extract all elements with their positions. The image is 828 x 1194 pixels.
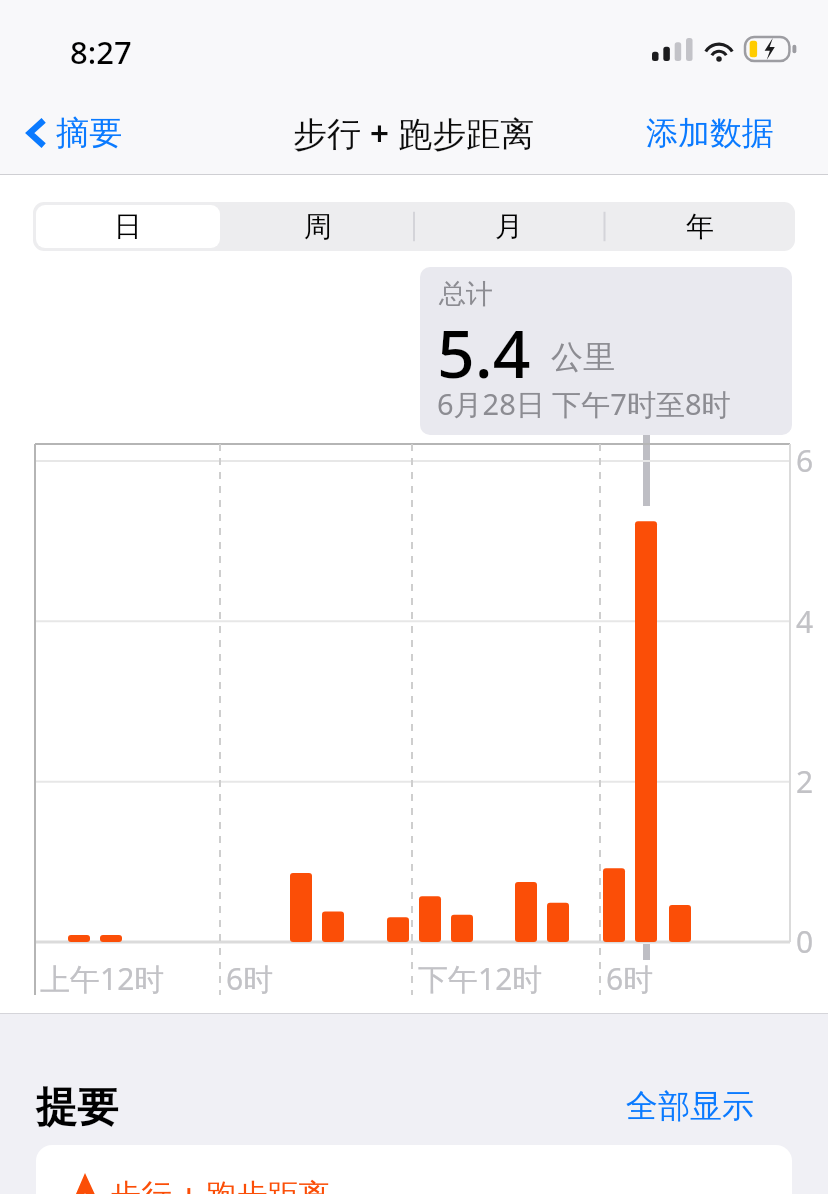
staticText: 8:27: [70, 31, 132, 73]
staticText: 上午12时: [40, 958, 165, 999]
staticText: 6月28日 下午7时至8时: [437, 384, 731, 424]
staticText: 周: [304, 209, 332, 244]
staticText: 日: [114, 209, 142, 244]
staticText: 年: [686, 209, 714, 244]
staticText: 6: [796, 440, 814, 481]
staticText: 提要: [36, 1082, 118, 1134]
button[interactable]: 月: [413, 202, 604, 251]
staticText: 6时: [226, 958, 274, 999]
button[interactable]: 全部显示: [600, 1078, 780, 1134]
staticText: 总计: [439, 277, 493, 311]
button[interactable]: 日: [33, 202, 223, 251]
staticText: 步行 + 跑步距离: [293, 110, 535, 156]
button[interactable]: 步行 + 跑步距离: [36, 1145, 792, 1194]
other: Back: [26, 116, 47, 150]
button[interactable]: Back: [14, 100, 134, 166]
staticText: 2: [796, 761, 814, 802]
staticText: 添加数据: [646, 113, 774, 153]
staticText: 4: [796, 601, 814, 642]
button[interactable]: 年: [604, 202, 795, 251]
staticText: 6时: [606, 958, 654, 999]
staticText: 步行 + 跑步距离: [110, 1173, 330, 1194]
staticText: 0: [796, 921, 814, 962]
staticText: 全部显示: [626, 1086, 754, 1126]
button[interactable]: 添加数据: [620, 100, 800, 166]
staticText: 公里: [551, 337, 615, 377]
staticText: 月: [495, 209, 523, 244]
staticText: 下午12时: [418, 958, 543, 999]
button[interactable]: 周: [223, 202, 413, 251]
staticText: 摘要: [56, 112, 122, 154]
staticText: 5.4: [437, 307, 531, 397]
